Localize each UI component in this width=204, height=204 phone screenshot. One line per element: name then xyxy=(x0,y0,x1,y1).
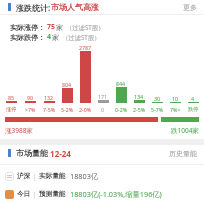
button[interactable]: 历史量能 xyxy=(169,149,197,158)
staticText: 跌停 xyxy=(188,106,199,113)
staticText: 132 xyxy=(44,94,54,101)
staticText: 2787 xyxy=(79,44,92,51)
staticText: | xyxy=(31,190,39,199)
staticText: 75 xyxy=(47,22,56,32)
staticText: 12-24 xyxy=(48,148,71,159)
staticText: >7% xyxy=(25,106,36,113)
staticText: 实际涨停： xyxy=(10,23,45,32)
staticText: 90 xyxy=(27,94,34,101)
staticText: 跌1004家 xyxy=(171,126,199,135)
staticText: 今日 xyxy=(17,190,31,198)
staticText: 沪深 xyxy=(17,172,31,180)
staticText: | xyxy=(31,172,39,181)
staticText: 实际跌停： xyxy=(10,33,45,42)
staticText: 18803亿 xyxy=(70,171,99,181)
staticText: 0-2% xyxy=(115,106,128,113)
button[interactable]: 沪深 xyxy=(5,167,200,185)
staticText: 844 xyxy=(116,80,126,87)
staticText: 7%< xyxy=(170,106,181,113)
staticText: 历史量能 xyxy=(169,149,197,158)
button[interactable]: 今日 xyxy=(5,185,200,203)
staticText: 家 xyxy=(52,33,59,42)
staticText: 涨3988家 xyxy=(5,126,33,135)
staticText: 804 xyxy=(62,81,72,88)
staticText: 10 xyxy=(172,95,179,102)
staticText: 市场人气高涨 xyxy=(51,2,99,12)
staticText: 2-0% xyxy=(79,106,92,113)
staticText: 涨跌统计: xyxy=(16,2,51,13)
staticText: 0 xyxy=(101,106,105,113)
staticText: 4 xyxy=(47,32,52,42)
staticText: 4 xyxy=(191,95,195,102)
staticText: 134 xyxy=(134,93,144,100)
staticText: 85 xyxy=(8,94,15,101)
staticText: 实际量能 xyxy=(39,172,66,180)
staticText: （过滤ST股） xyxy=(66,23,105,32)
button[interactable]: 更多 xyxy=(183,3,197,12)
staticText: 家 xyxy=(56,23,63,32)
staticText: 18803亿(-1.03%,缩量196亿) xyxy=(70,189,162,199)
staticText: 7-5% xyxy=(43,106,56,113)
staticText: 市场量能 xyxy=(16,148,48,158)
staticText: 涨停 xyxy=(6,106,17,113)
staticText: 2-5% xyxy=(133,106,146,113)
staticText: 更多 xyxy=(183,3,197,12)
staticText: 5-7% xyxy=(151,106,164,113)
staticText: （过滤ST股） xyxy=(62,33,101,42)
staticText: 5-2% xyxy=(61,106,74,113)
staticText: 预测量能 xyxy=(39,190,66,198)
staticText: 30 xyxy=(154,95,161,102)
staticText: 171 xyxy=(98,93,108,100)
